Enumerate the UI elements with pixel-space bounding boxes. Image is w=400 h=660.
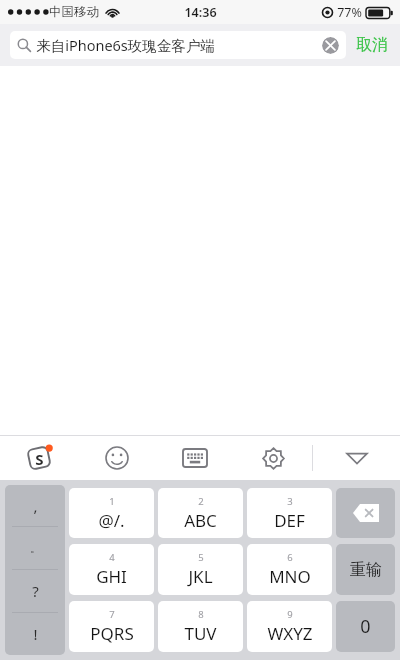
staticText: PQRS: [90, 622, 134, 645]
button[interactable]: 4: [69, 544, 154, 595]
staticText: 5: [198, 551, 204, 564]
staticText: 重输: [350, 560, 382, 580]
staticText: TUV: [184, 622, 217, 645]
staticText: 0: [360, 614, 371, 639]
button[interactable]: Settings: [234, 436, 312, 480]
button[interactable]: 0: [336, 601, 395, 652]
staticText: ,: [33, 496, 38, 516]
button[interactable]: 来自iPhone6s玫瑰金客户端: [10, 31, 346, 59]
staticText: 。: [30, 541, 41, 555]
button[interactable]: Sogou input: [0, 436, 78, 480]
button[interactable]: Backspace: [336, 488, 395, 538]
staticText: 4: [109, 551, 115, 564]
button[interactable]: Hide keyboard: [313, 436, 400, 480]
staticText: GHI: [96, 565, 127, 588]
staticText: 9: [287, 608, 293, 621]
staticText: 7: [109, 608, 115, 621]
staticText: 6: [287, 551, 293, 564]
staticText: !: [33, 624, 38, 644]
staticText: ?: [32, 581, 39, 601]
staticText: 14:36: [184, 4, 217, 21]
button[interactable]: 重输: [336, 544, 395, 595]
staticText: ABC: [184, 509, 217, 532]
staticText: @/.: [98, 509, 125, 532]
button[interactable]: 1: [69, 488, 154, 538]
staticText: 来自iPhone6s玫瑰金客户端: [36, 35, 215, 55]
button[interactable]: 8: [158, 601, 243, 652]
staticText: 2: [198, 495, 204, 508]
button[interactable]: 6: [247, 544, 332, 595]
staticText: 中国移动: [49, 4, 99, 20]
button[interactable]: Keyboard layout: [156, 436, 234, 480]
staticText: 77%: [337, 4, 362, 21]
staticText: 8: [198, 608, 204, 621]
button[interactable]: 3: [247, 488, 332, 538]
staticText: WXYZ: [267, 622, 313, 645]
button[interactable]: 7: [69, 601, 154, 652]
button[interactable]: 5: [158, 544, 243, 595]
staticText: S: [35, 449, 44, 469]
staticText: 取消: [356, 35, 388, 55]
staticText: MNO: [269, 565, 311, 588]
button[interactable]: 9: [247, 601, 332, 652]
button[interactable]: Emoji: [78, 436, 156, 480]
button[interactable]: ?: [5, 570, 65, 612]
button[interactable]: 取消: [346, 35, 390, 55]
button[interactable]: ,: [5, 485, 65, 526]
staticText: DEF: [274, 509, 305, 532]
staticText: 3: [287, 495, 293, 508]
staticText: JKL: [188, 565, 213, 588]
button[interactable]: 2: [158, 488, 243, 538]
staticText: 1: [109, 495, 115, 508]
button[interactable]: Clear text: [322, 37, 339, 54]
button[interactable]: !: [5, 613, 65, 655]
